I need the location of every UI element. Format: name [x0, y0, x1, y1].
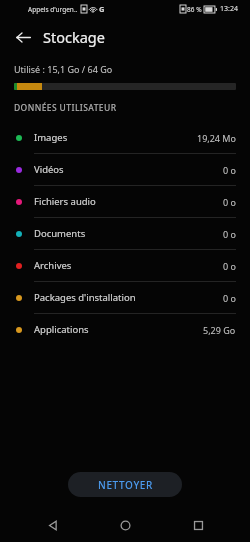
- staticText: 0 o: [223, 164, 236, 176]
- staticText: 5,29 Go: [203, 324, 236, 336]
- button[interactable]: Back: [9, 23, 37, 51]
- button[interactable]: Images: [0, 122, 250, 153]
- staticText: Stockage: [43, 27, 105, 47]
- staticText: Utilisé : 15,1 Go / 64 Go: [14, 63, 113, 75]
- button[interactable]: Vidéos: [0, 154, 250, 185]
- staticText: 19,24 Mo: [197, 132, 236, 144]
- staticText: 0 o: [223, 228, 236, 240]
- button[interactable]: Home: [105, 508, 145, 542]
- staticText: NETTOYER: [98, 478, 153, 492]
- button[interactable]: Back: [33, 508, 73, 542]
- button[interactable]: Applications: [0, 314, 250, 345]
- staticText: Documents: [34, 227, 86, 240]
- button[interactable]: Archives: [0, 250, 250, 281]
- staticText: Packages d'installation: [34, 291, 136, 304]
- staticText: 0 o: [223, 292, 236, 304]
- staticText: Appels d'urgen..: [28, 5, 78, 14]
- staticText: Applications: [34, 323, 89, 336]
- button[interactable]: Recent apps: [178, 508, 218, 542]
- staticText: Images: [34, 131, 68, 144]
- staticText: 0 o: [223, 196, 236, 208]
- staticText: 86 %: [187, 5, 202, 14]
- staticText: 13:24: [220, 4, 238, 14]
- staticText: 0 o: [223, 260, 236, 272]
- staticText: Vidéos: [34, 163, 64, 176]
- staticText: Archives: [34, 259, 72, 272]
- staticText: Fichiers audio: [34, 195, 96, 208]
- button[interactable]: Documents: [0, 218, 250, 249]
- staticText: DONNÉES UTILISATEUR: [14, 102, 117, 114]
- staticText: G: [99, 4, 105, 14]
- button[interactable]: Fichiers audio: [0, 186, 250, 217]
- button[interactable]: NETTOYER: [68, 472, 182, 497]
- button[interactable]: Packages d'installation: [0, 282, 250, 313]
